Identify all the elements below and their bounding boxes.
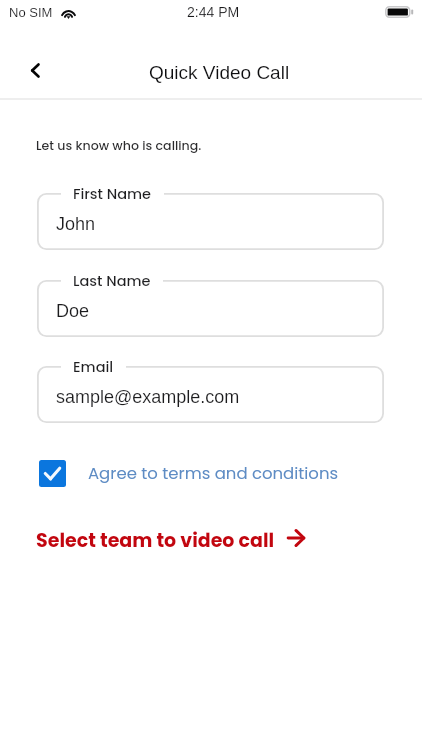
staticText: sample@example.com	[56, 387, 240, 407]
button[interactable]: Email	[37, 366, 384, 423]
staticText: No SIM	[9, 5, 53, 20]
staticText: 2:44 PM	[187, 4, 240, 20]
staticText: Last Name	[73, 271, 151, 291]
button[interactable]: Agree to terms and conditions	[39, 460, 339, 487]
staticText: Quick Video Call	[149, 62, 290, 83]
staticText: Agree to terms and conditions	[88, 462, 339, 485]
staticText: John	[56, 214, 96, 234]
staticText: Email	[73, 357, 114, 377]
staticText: First Name	[73, 184, 152, 204]
button[interactable]: Back	[17, 52, 53, 88]
staticText: Select team to video call	[36, 527, 275, 554]
staticText: Doe	[56, 301, 90, 321]
button[interactable]: First Name	[37, 193, 384, 250]
button[interactable]: Select team to video call	[36, 527, 306, 554]
staticText: Let us know who is calling.	[36, 137, 202, 155]
button[interactable]: Last Name	[37, 280, 384, 337]
